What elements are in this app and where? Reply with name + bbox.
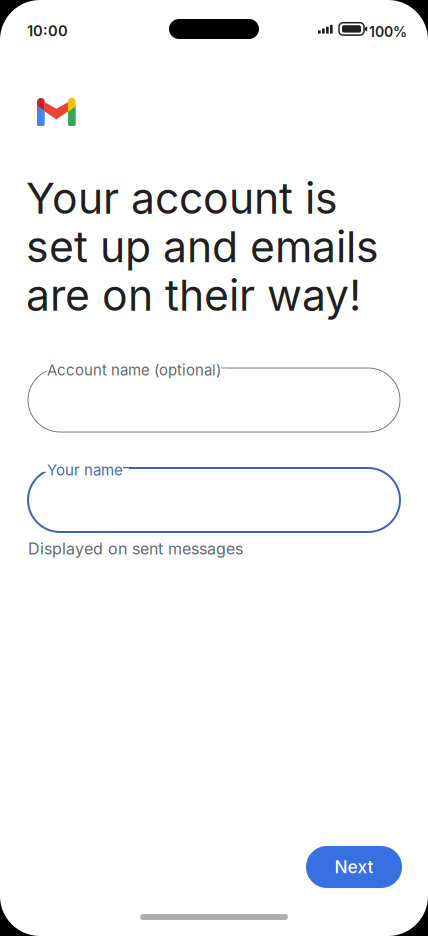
staticText: Displayed on sent messages [28, 539, 243, 558]
staticText: 10:00 [27, 22, 68, 40]
button[interactable]: Next [306, 846, 402, 888]
staticText: Your name [47, 461, 123, 479]
button[interactable]: Account name (optional) [28, 368, 400, 432]
staticText: Account name (optional) [47, 361, 221, 379]
button[interactable]: Your name [28, 468, 400, 532]
staticText: Your account is set up and emails are on… [26, 174, 379, 320]
staticText: Next [334, 856, 373, 877]
staticText: 100% [369, 23, 407, 40]
